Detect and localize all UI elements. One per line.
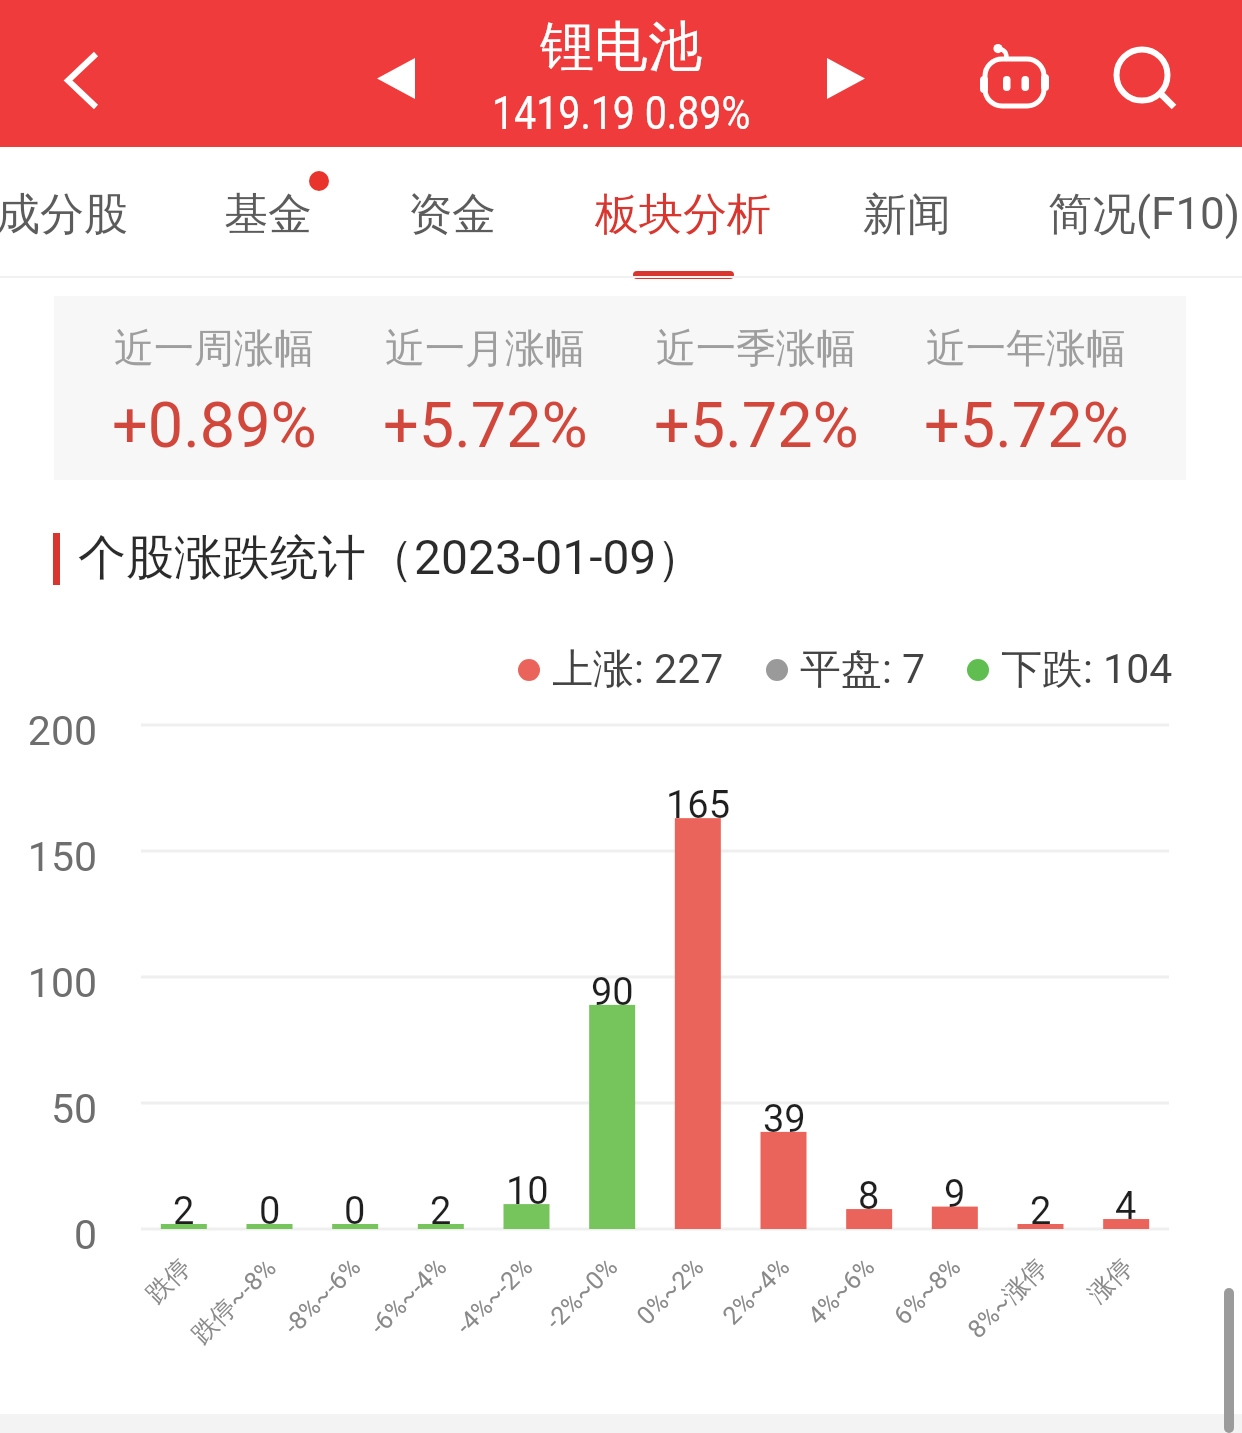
staticText: 板块分析 [595,187,771,242]
button[interactable]: 成分股 [0,147,182,278]
staticText: 2 [430,1189,452,1234]
staticText: 90 [591,970,634,1015]
staticText: 39 [763,1097,806,1142]
staticText: 165 [666,783,731,828]
staticText: 2%~4% [717,1252,795,1330]
staticText: 0 [259,1189,281,1234]
button[interactable]: Next sector [806,38,886,118]
staticText: -8%~-6% [278,1252,366,1340]
staticText: 近一年涨幅 [926,323,1126,373]
staticText: 50 [50,1085,97,1133]
staticText: +0.89% [112,389,317,463]
staticText: 6%~8% [888,1252,966,1330]
staticText: 涨停 [1082,1252,1139,1309]
staticText: 近一周涨幅 [114,323,314,373]
staticText: 8 [858,1174,880,1219]
staticText: 100 [27,959,97,1007]
staticText: +5.72% [383,389,588,463]
button[interactable]: 近一月涨幅 [350,296,620,480]
button[interactable]: 资金 [332,147,572,278]
staticText: 基金 [224,187,312,242]
button[interactable]: AI assistant [968,31,1062,121]
staticText: 下跌: 104 [1001,644,1173,696]
button[interactable]: 近一季涨幅 [621,296,891,480]
staticText: 近一季涨幅 [656,323,856,373]
button[interactable]: 基金 [148,147,388,278]
button[interactable]: 上涨: 227 [518,644,724,696]
staticText: 锂电池 [540,13,702,81]
staticText: 150 [27,833,97,881]
button[interactable]: Search [1098,33,1192,123]
button[interactable]: 平盘: 7 [766,644,926,696]
button[interactable]: 简况(F10) [1024,147,1242,278]
button[interactable]: 个股涨跌统计（2023-01-09） [53,528,705,588]
staticText: 近一月涨幅 [385,323,585,373]
button[interactable]: 近一年涨幅 [891,296,1161,480]
staticText: 简况(F10) [1048,187,1241,242]
staticText: 4 [1115,1184,1137,1229]
staticText: -6%~-4% [364,1252,452,1340]
staticText: +5.72% [924,389,1129,463]
staticText: -2%~0% [540,1252,623,1335]
staticText: 上涨: 227 [552,644,724,696]
staticText: 8%~涨停 [961,1252,1054,1345]
staticText: 新闻 [863,187,951,242]
staticText: 跌停~-8% [185,1252,283,1350]
staticText: 平盘: 7 [800,644,926,696]
staticText: 个股涨跌统计（2023-01-09） [78,528,705,588]
staticText: 2 [173,1189,195,1234]
staticText: 0 [344,1189,366,1234]
button[interactable]: 下跌: 104 [967,644,1173,696]
button[interactable]: 锂电池 [456,0,786,147]
staticText: 9 [944,1172,966,1217]
staticText: 4%~6% [802,1252,880,1330]
staticText: 成分股 [0,187,128,242]
staticText: 0 [73,1211,97,1259]
staticText: 200 [27,707,97,755]
button[interactable]: 近一周涨幅 [79,296,349,480]
staticText: 跌停 [140,1252,197,1309]
staticText: 2 [1030,1189,1052,1234]
staticText: +5.72% [654,389,859,463]
button[interactable]: 新闻 [787,147,1027,278]
staticText: 资金 [408,187,496,242]
staticText: 10 [506,1169,549,1214]
button[interactable]: Previous sector [356,38,436,118]
button[interactable]: Back [36,35,128,125]
staticText: 0%~2% [631,1252,709,1330]
button[interactable]: 板块分析 [563,147,803,278]
staticText: -4%~-2% [450,1252,538,1340]
staticText: 1419.19 0.89% [492,86,751,140]
